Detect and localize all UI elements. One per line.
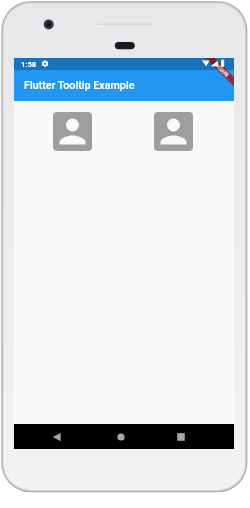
button[interactable]: Account [53, 112, 92, 151]
button[interactable]: Home [114, 432, 128, 442]
button[interactable]: Recent apps [174, 432, 188, 442]
staticText: 1:58 [21, 60, 37, 69]
button[interactable]: Account [154, 112, 193, 151]
staticText: Flutter Tooltip Example [24, 79, 135, 92]
button[interactable]: Back [52, 432, 70, 442]
